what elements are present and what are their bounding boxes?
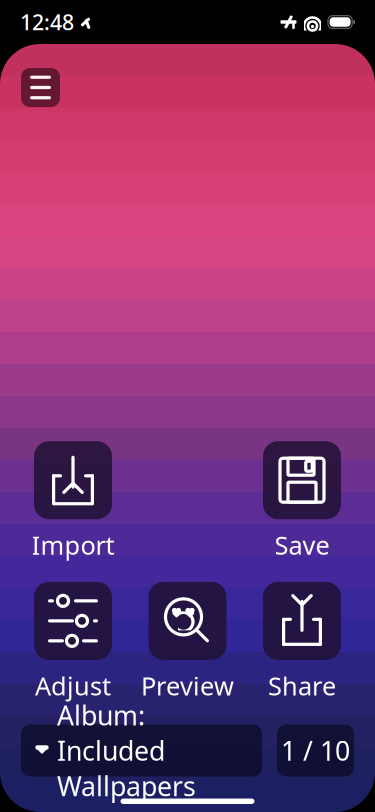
button[interactable]: Save [250,441,354,562]
button[interactable]: Preview [135,582,239,702]
staticText: Adjust [35,669,111,702]
button[interactable]: 1 / 10 [277,724,354,776]
staticText: 1 / 10 [281,733,350,768]
staticText: Save [274,528,329,562]
staticText: Album: Included Wallpapers [57,697,196,804]
staticText: Share [268,669,336,702]
staticText: Import [31,528,114,562]
button[interactable]: Menu [21,68,60,107]
button[interactable]: Album: Included Wallpapers [21,724,262,776]
button[interactable]: Share [250,582,354,702]
staticText: Preview [141,669,234,702]
staticText: 12:48 [20,8,74,36]
button[interactable]: Adjust [21,582,125,702]
button[interactable]: Import [21,441,125,562]
